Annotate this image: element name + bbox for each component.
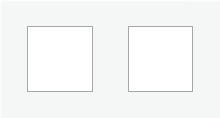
button[interactable]: Left panel — [27, 26, 93, 92]
button[interactable]: Right panel — [128, 26, 193, 92]
